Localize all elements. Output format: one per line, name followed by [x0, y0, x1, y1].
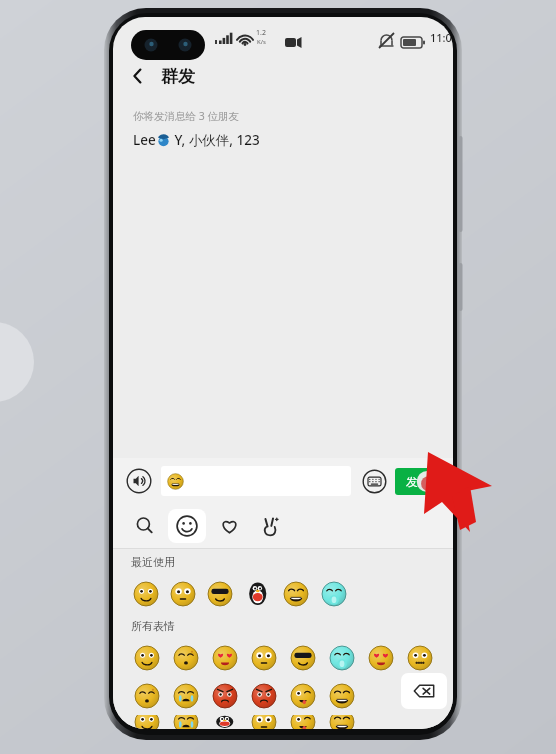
button[interactable]: Emoji 2	[166, 639, 205, 677]
staticText: Y, 小伙伴, 123	[171, 131, 260, 149]
button[interactable]: Emoji 8	[400, 639, 439, 677]
button[interactable]: Emoji 2	[164, 575, 201, 613]
staticText: 你将发消息给 3 位朋友	[133, 109, 239, 123]
button[interactable]: Emoji 1	[127, 677, 166, 715]
button[interactable]: Emoji 2	[166, 715, 205, 729]
button[interactable]: Emoji 8	[400, 715, 439, 729]
button[interactable]: Emoji 8	[400, 677, 439, 715]
button[interactable]: 发送	[395, 468, 441, 495]
button[interactable]: Backspace	[401, 673, 447, 709]
staticText: 11:01	[430, 30, 453, 45]
button[interactable]: Emoji 4	[244, 639, 283, 677]
button[interactable]: Favourites	[211, 508, 247, 544]
button[interactable]: Emoji 1	[127, 715, 166, 729]
button[interactable]: Emoji 3	[205, 715, 244, 729]
button[interactable]: Emoji 3	[205, 677, 244, 715]
button[interactable]: Emoji 5	[283, 715, 322, 729]
button[interactable]: Voice input	[125, 467, 153, 495]
button[interactable]: Emoji 4	[239, 575, 277, 613]
button[interactable]: Emoji 6	[322, 639, 361, 677]
button[interactable]: Emoji 1	[127, 639, 166, 677]
staticText: Lee	[133, 131, 156, 149]
button[interactable]: Emoji 4	[244, 715, 283, 729]
button[interactable]: Emoji 3	[205, 639, 244, 677]
button[interactable]: Emoji	[168, 509, 206, 543]
button[interactable]: Emoji 6	[322, 677, 361, 715]
button[interactable]	[161, 466, 351, 496]
button[interactable]: Emoji 6	[315, 575, 353, 613]
button[interactable]: Emoji 2	[166, 677, 205, 715]
staticText: 最近使用	[131, 555, 175, 569]
button[interactable]: Gestures	[252, 508, 288, 544]
staticText: 群发	[161, 66, 195, 87]
button[interactable]: Emoji 4	[244, 677, 283, 715]
button[interactable]: Emoji 3	[201, 575, 239, 613]
button[interactable]: Emoji 5	[283, 677, 322, 715]
staticText: 1.2	[256, 28, 266, 38]
button[interactable]: Emoji 6	[322, 715, 361, 729]
button[interactable]: Emoji 5	[277, 575, 315, 613]
button[interactable]: Search emoji	[127, 508, 163, 544]
button[interactable]: Emoji 5	[283, 639, 322, 677]
button[interactable]: Emoji 1	[127, 575, 164, 613]
button[interactable]: Emoji 7	[361, 639, 400, 677]
staticText: 所有表情	[131, 619, 175, 633]
staticText: 发送	[406, 474, 430, 489]
button[interactable]: Keyboard	[361, 468, 387, 494]
button[interactable]: Back	[121, 59, 155, 93]
staticText: K/s	[257, 38, 266, 46]
